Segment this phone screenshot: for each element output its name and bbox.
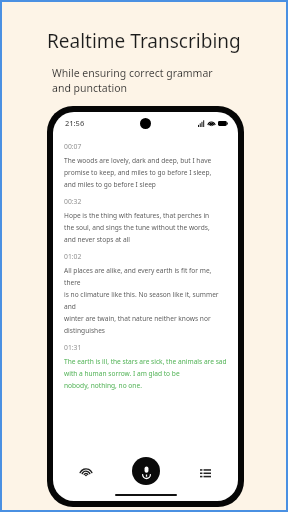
button[interactable]: Transcripts list	[194, 461, 216, 483]
staticText: Hope is the thing with features, that pe…	[64, 211, 210, 244]
staticText: The woods are lovely, dark and deep, but…	[64, 156, 212, 189]
staticText: Realtime Transcribing	[47, 28, 241, 54]
button[interactable]: Connection	[75, 461, 97, 483]
staticText: 21:56	[65, 118, 85, 128]
button[interactable]: Record	[132, 457, 160, 485]
staticText: While ensuring correct grammar and punct…	[52, 66, 213, 95]
staticText: 01:02	[64, 252, 82, 261]
staticText: All places are alike, and every earth is…	[64, 266, 227, 335]
staticText: The earth is ill, the stars are sick, th…	[64, 357, 227, 390]
staticText: 00:07	[64, 142, 82, 151]
staticText: 01:31	[64, 343, 82, 352]
staticText: 00:32	[64, 197, 82, 206]
